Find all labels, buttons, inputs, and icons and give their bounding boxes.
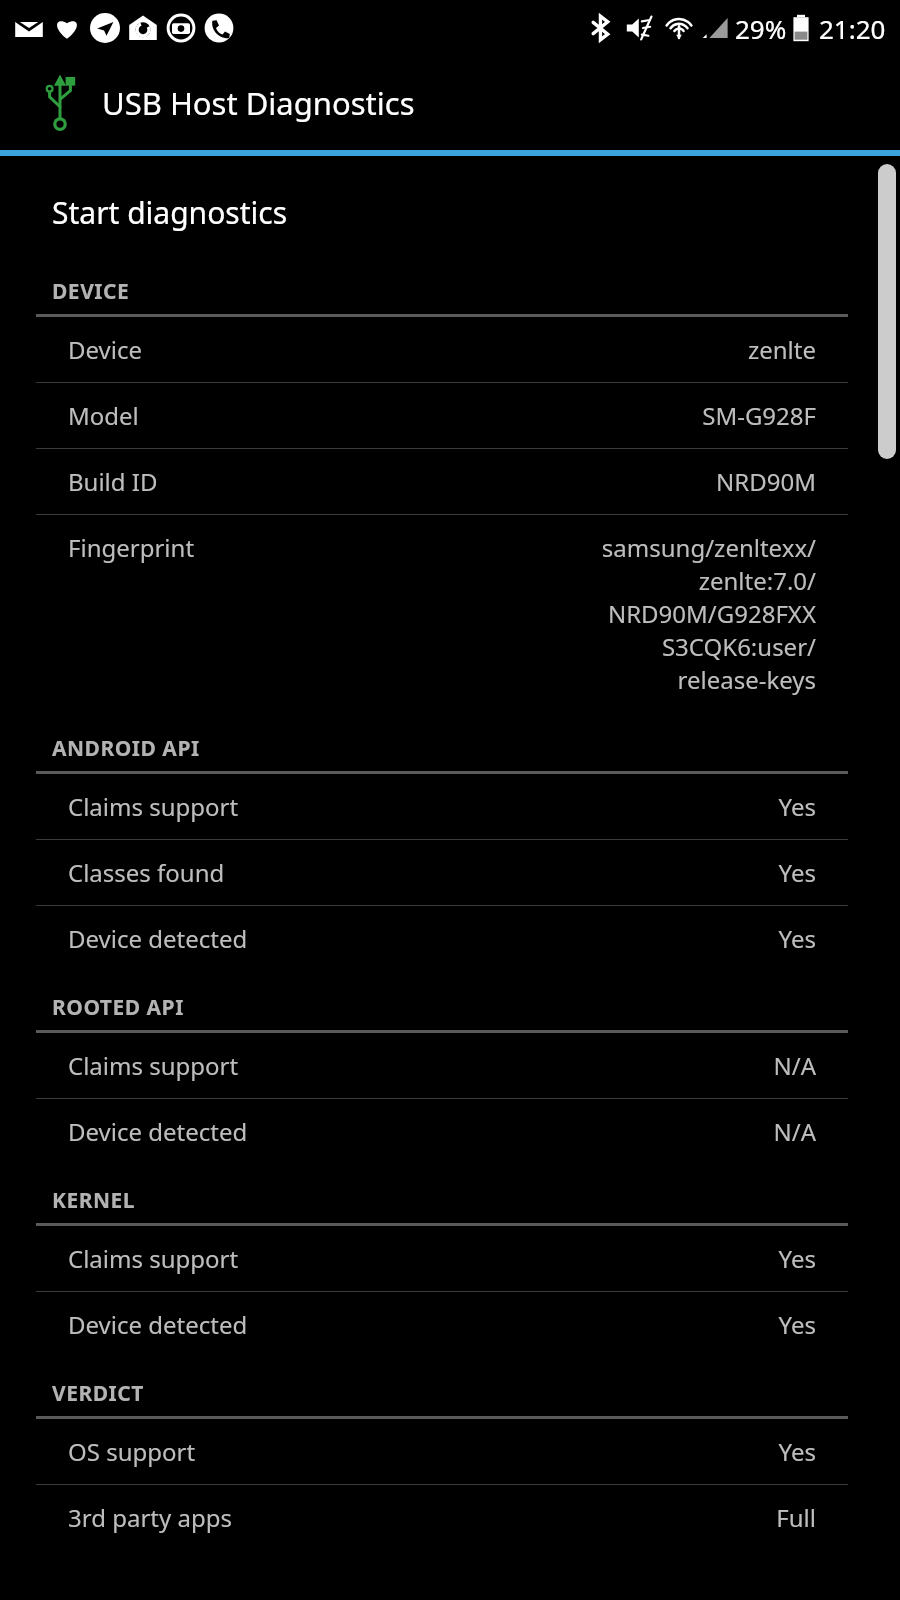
staticText: Device: [68, 333, 143, 366]
staticText: NRD90M: [716, 465, 816, 498]
staticText: Start diagnostics: [52, 192, 288, 233]
staticText: samsung/zenltexx/zenlte:7.0/NRD90M/G928F…: [601, 531, 816, 696]
staticText: N/A: [773, 1115, 816, 1148]
button[interactable]: Device detected: [0, 1292, 900, 1357]
staticText: VERDICT: [52, 1379, 144, 1408]
button[interactable]: Device detected: [0, 906, 900, 971]
staticText: 21:20: [819, 11, 886, 46]
button[interactable]: Device detected: [0, 1099, 900, 1164]
staticText: Claims support: [68, 790, 239, 823]
button[interactable]: 3rd party apps: [0, 1485, 900, 1550]
staticText: Yes: [778, 790, 816, 823]
button[interactable]: Start diagnostics: [0, 156, 900, 255]
staticText: ANDROID API: [52, 734, 200, 763]
button[interactable]: Claims support: [0, 1226, 900, 1291]
staticText: SM-G928F: [702, 399, 816, 432]
button[interactable]: Classes found: [0, 840, 900, 905]
button[interactable]: Fingerprint: [0, 515, 900, 712]
button[interactable]: Claims support: [0, 1033, 900, 1098]
button[interactable]: Device: [0, 317, 900, 382]
button[interactable]: Model: [0, 383, 900, 448]
staticText: KERNEL: [52, 1186, 136, 1215]
staticText: 3rd party apps: [68, 1501, 232, 1534]
staticText: Claims support: [68, 1049, 239, 1082]
staticText: Full: [776, 1501, 816, 1534]
staticText: DEVICE: [52, 277, 130, 306]
staticText: Yes: [778, 1242, 816, 1275]
staticText: OS support: [68, 1435, 196, 1468]
staticText: zenlte: [747, 333, 816, 366]
staticText: USB Host Diagnostics: [102, 82, 415, 124]
staticText: N/A: [773, 1049, 816, 1082]
staticText: Fingerprint: [68, 531, 195, 564]
button[interactable]: Claims support: [0, 774, 900, 839]
staticText: Yes: [778, 1308, 816, 1341]
button[interactable]: Build ID: [0, 449, 900, 514]
staticText: Build ID: [68, 465, 158, 498]
staticText: Device detected: [68, 1115, 248, 1148]
staticText: Claims support: [68, 1242, 239, 1275]
staticText: Device detected: [68, 1308, 248, 1341]
staticText: 29%: [735, 11, 787, 46]
staticText: Model: [68, 399, 139, 432]
staticText: Yes: [778, 1435, 816, 1468]
button[interactable]: OS support: [0, 1419, 900, 1484]
staticText: Classes found: [68, 856, 225, 889]
staticText: ROOTED API: [52, 993, 184, 1022]
staticText: Device detected: [68, 922, 248, 955]
staticText: Yes: [778, 856, 816, 889]
staticText: Yes: [778, 922, 816, 955]
